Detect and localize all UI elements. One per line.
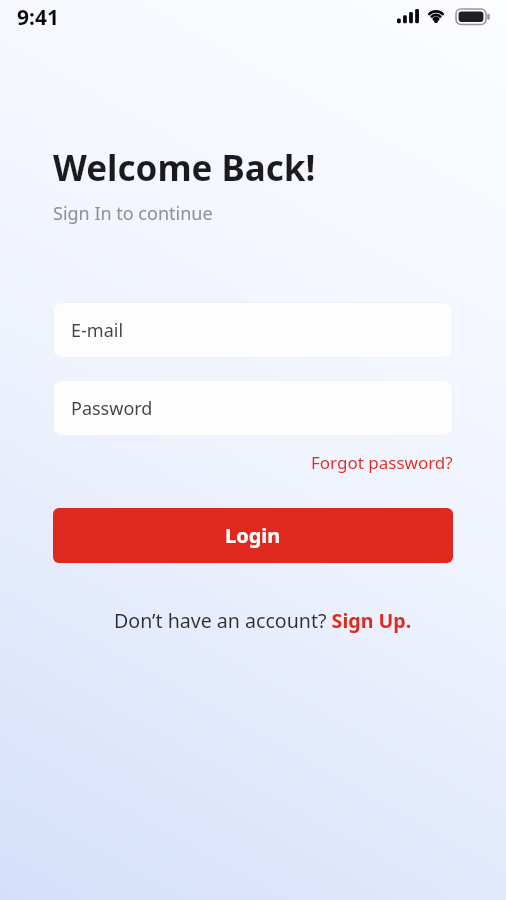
- staticText: Login: [225, 522, 281, 549]
- staticText: Don’t have an account? Sign Up.: [114, 607, 412, 634]
- staticText: Password: [71, 396, 153, 421]
- staticText: 9:41: [17, 3, 59, 32]
- button[interactable]: Forgot password?: [311, 451, 453, 474]
- button[interactable]: E-mail: [53, 302, 453, 358]
- staticText: Forgot password?: [311, 451, 453, 474]
- button[interactable]: Don’t have an account? Sign Up.: [63, 607, 463, 634]
- staticText: Sign In to continue: [53, 201, 213, 226]
- button[interactable]: Login: [53, 508, 453, 563]
- staticText: Welcome Back!: [53, 144, 316, 192]
- staticText: E-mail: [71, 318, 124, 343]
- button[interactable]: Password: [53, 380, 453, 436]
